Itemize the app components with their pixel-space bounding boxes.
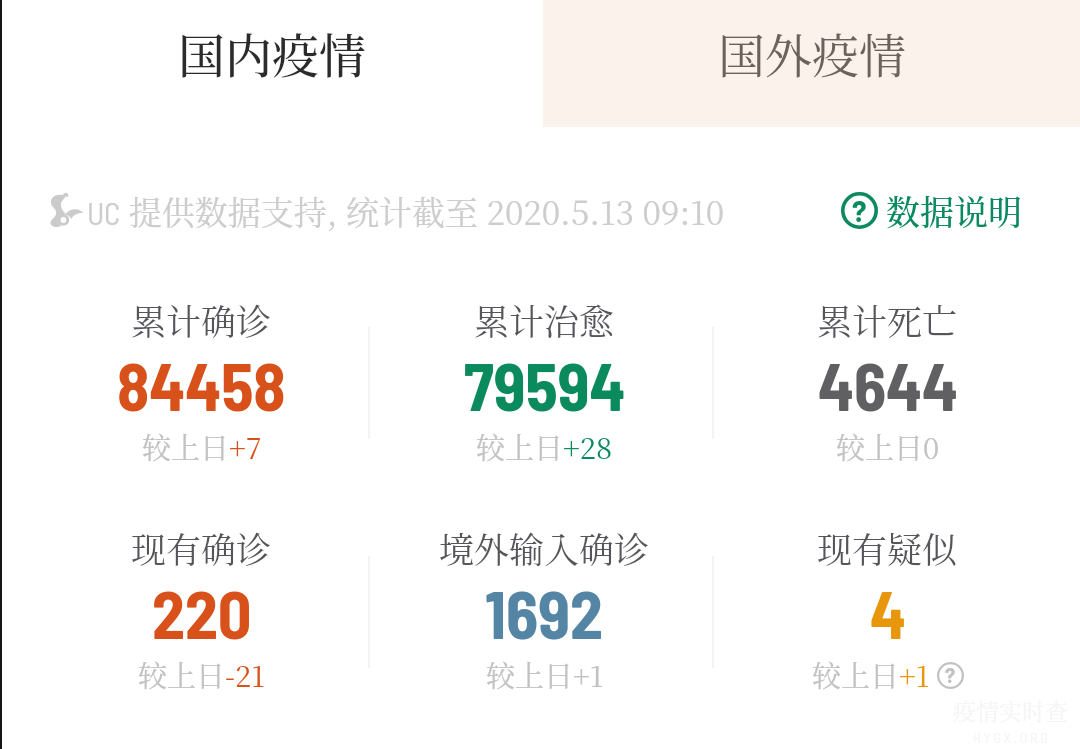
staticText: UC 提供数据支持, 统计截至 2020.5.13 09:10 — [87, 187, 725, 234]
staticText: 较上日+28 — [476, 426, 613, 468]
staticText: 疫情实时查 — [953, 694, 1068, 727]
staticText: 较上日0 — [836, 426, 940, 468]
staticText: 较上日-21 — [138, 654, 265, 696]
staticText: 累计确诊 — [131, 295, 272, 345]
staticText: 79594 — [464, 345, 626, 415]
other: Data explanation — [841, 192, 878, 229]
button[interactable]: 累计治愈 — [373, 293, 716, 465]
staticText: 国内疫情 — [178, 19, 366, 87]
staticText: 较上日+1 — [812, 654, 930, 696]
staticText: 现有确诊 — [131, 523, 272, 573]
staticText: 220 — [152, 573, 252, 643]
staticText: 84458 — [117, 345, 286, 415]
staticText: 较上日+7 — [142, 426, 262, 468]
button[interactable]: 国外疫情 — [543, 0, 1080, 127]
staticText: 国外疫情 — [718, 19, 906, 87]
button[interactable]: Data explanation — [841, 186, 1022, 234]
staticText: H Y G X . O R G — [973, 729, 1048, 746]
staticText: 1692 — [485, 573, 604, 643]
other: UC browser — [45, 191, 85, 229]
staticText: 4644 — [818, 345, 958, 415]
staticText: 4 — [870, 573, 906, 643]
staticText: ? — [852, 192, 867, 228]
staticText: 累计治愈 — [474, 295, 615, 345]
staticText: 较上日+1 — [486, 654, 604, 696]
staticText: 数据说明 — [886, 186, 1022, 234]
button[interactable]: 现有确诊 — [30, 521, 373, 693]
button[interactable]: 累计死亡 — [716, 293, 1059, 465]
button[interactable]: 境外输入确诊 — [373, 521, 716, 693]
staticText: 境外输入确诊 — [439, 523, 650, 573]
button[interactable]: 国内疫情 — [0, 0, 543, 127]
button[interactable]: 累计确诊 — [30, 293, 373, 465]
staticText: 累计死亡 — [817, 295, 958, 345]
staticText: 现有疑似 — [817, 523, 958, 573]
button[interactable]: 现有疑似 — [716, 521, 1059, 693]
staticText: ? — [945, 662, 956, 687]
